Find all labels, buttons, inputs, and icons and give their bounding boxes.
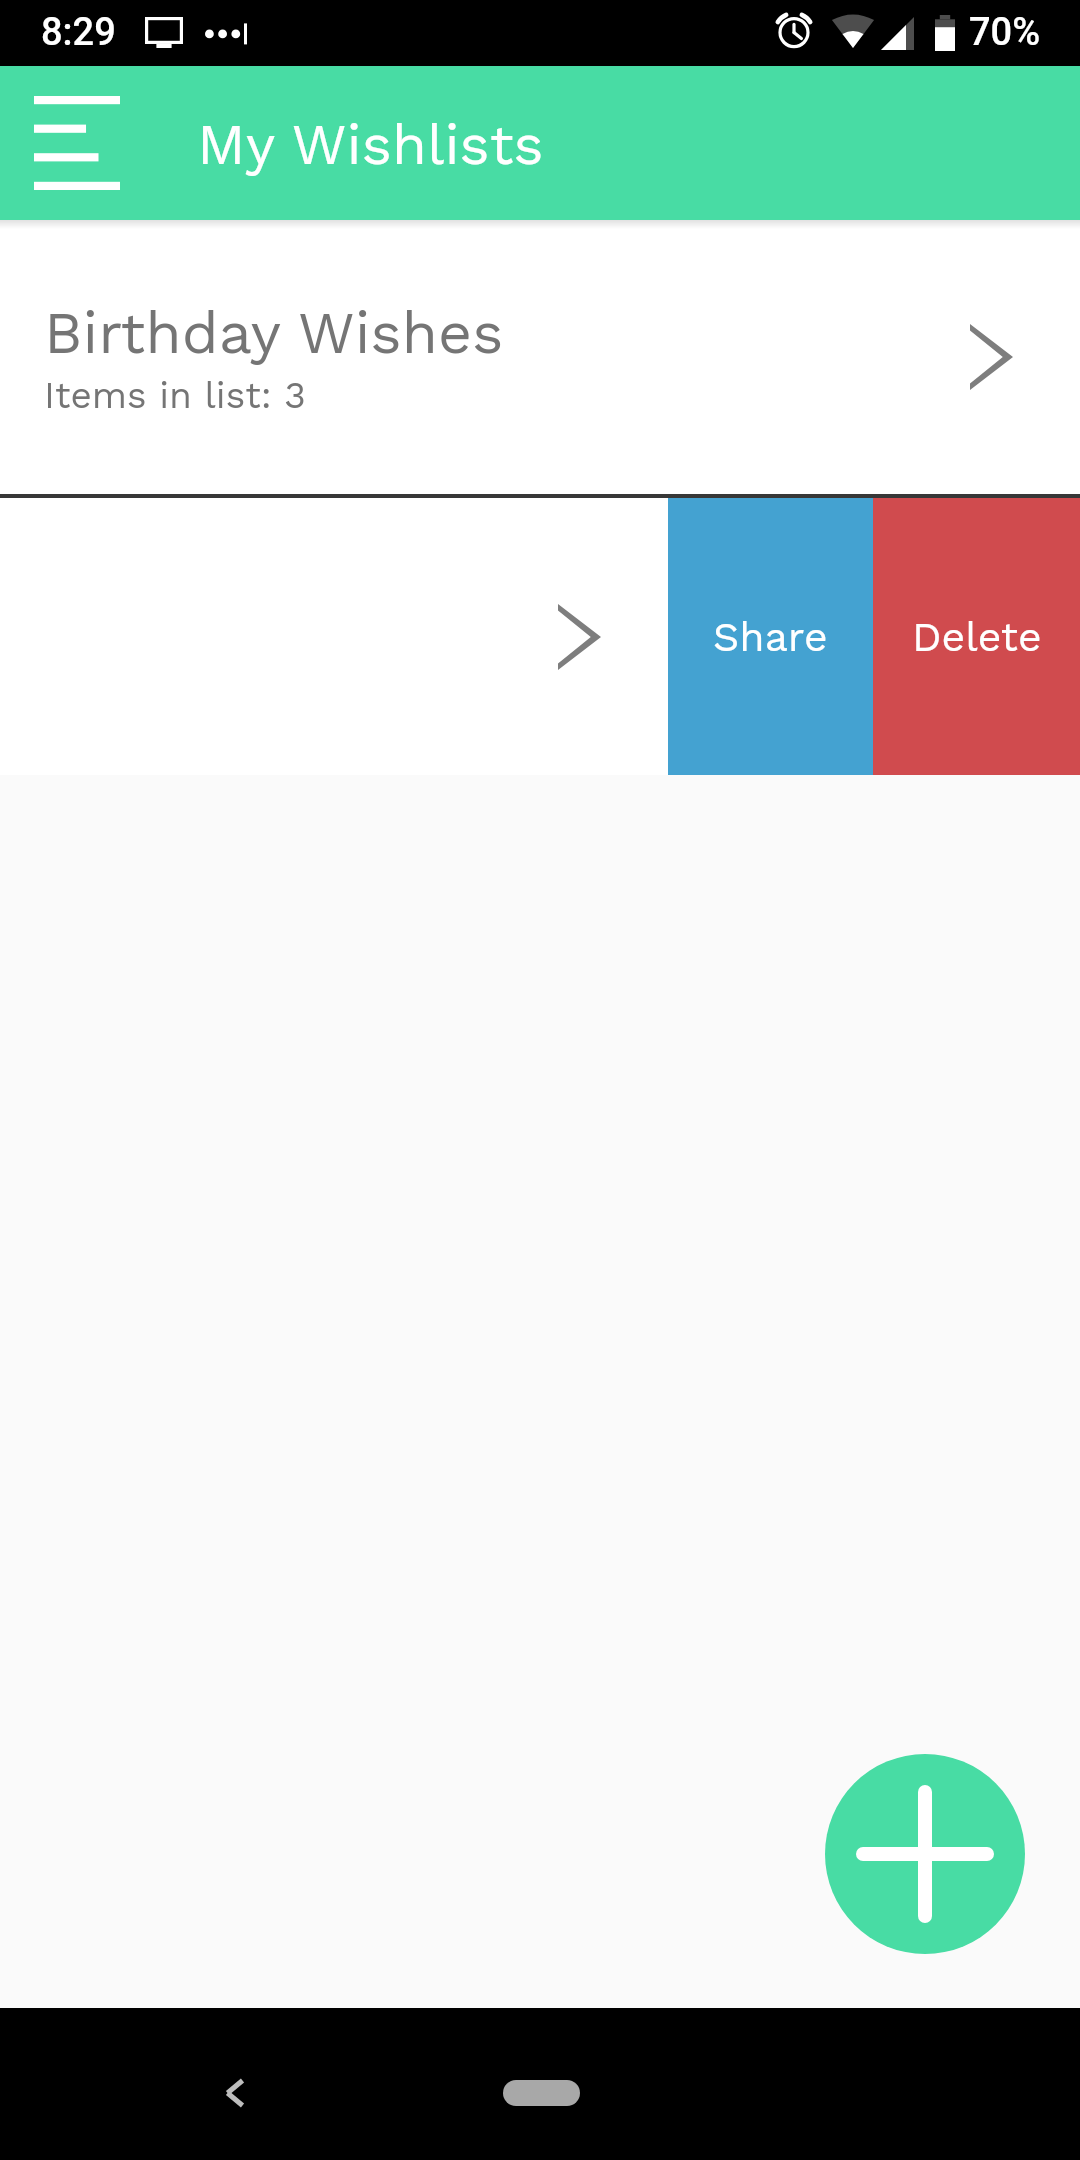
button[interactable]: Birthday Wishes	[0, 220, 1080, 494]
button[interactable]: Share	[668, 498, 873, 775]
staticText: Delete	[912, 613, 1042, 661]
button[interactable]: Home	[503, 2080, 580, 2106]
staticText: Items in list: 3	[44, 374, 306, 417]
button[interactable]: Delete	[873, 498, 1080, 775]
staticText: Share	[713, 613, 828, 661]
staticText: 8:29	[41, 10, 116, 55]
staticText: 70%	[969, 10, 1041, 55]
staticText: Birthday Wishes	[44, 298, 504, 367]
staticText: My Wishlists	[197, 111, 544, 178]
button[interactable]	[0, 498, 668, 775]
button[interactable]: Back	[159, 2017, 311, 2160]
button[interactable]: Open navigation menu	[4, 66, 150, 220]
button[interactable]: Add wishlist	[825, 1754, 1025, 1954]
